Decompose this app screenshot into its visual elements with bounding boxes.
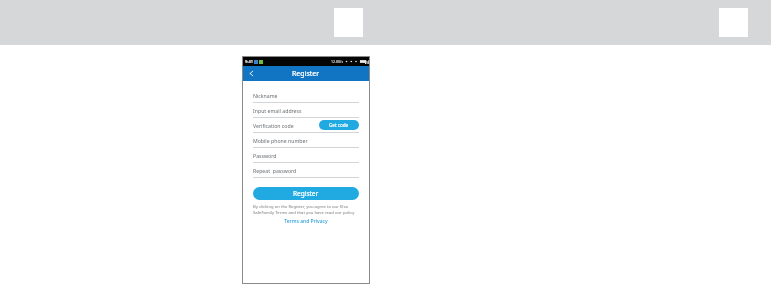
staticText: Input email address bbox=[253, 107, 302, 114]
button[interactable]: Mobile phone number bbox=[253, 133, 359, 147]
staticText: Repeat password bbox=[253, 167, 297, 174]
button[interactable]: Get code bbox=[319, 120, 359, 130]
button[interactable]: Verification code bbox=[253, 118, 359, 132]
button[interactable]: Password bbox=[253, 148, 359, 162]
button[interactable]: Terms and Privacy bbox=[284, 218, 328, 225]
staticText: 9:41 bbox=[245, 59, 253, 64]
staticText: Register bbox=[293, 189, 319, 198]
staticText: Verification code bbox=[253, 122, 294, 129]
button[interactable]: Repeat password bbox=[253, 163, 359, 177]
button[interactable]: Nickname bbox=[253, 88, 359, 102]
button[interactable]: Back bbox=[243, 66, 259, 81]
staticText: Mobile phone number bbox=[253, 137, 308, 144]
staticText: Terms and Privacy bbox=[284, 218, 328, 225]
staticText: Password bbox=[253, 152, 277, 159]
staticText: By clicking on the Register, you agree t… bbox=[253, 204, 359, 215]
staticText: Get code bbox=[329, 122, 349, 128]
button[interactable]: Input email address bbox=[253, 103, 359, 117]
staticText: Register bbox=[292, 69, 320, 79]
staticText: 12.8K/s bbox=[331, 59, 344, 64]
staticText: Nickname bbox=[253, 92, 278, 99]
button[interactable]: Register bbox=[253, 187, 359, 200]
